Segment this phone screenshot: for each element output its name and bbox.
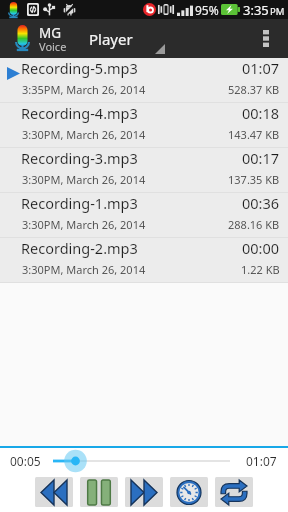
staticText: 95% bbox=[195, 2, 219, 18]
staticText: 1.22 KB bbox=[241, 262, 280, 277]
button[interactable]: Pause bbox=[80, 477, 118, 507]
staticText: 528.37 KB bbox=[228, 82, 280, 97]
staticText: 3:30PM, March 26, 2014 bbox=[22, 127, 146, 142]
staticText: 3:35PM, March 26, 2014 bbox=[22, 82, 146, 97]
button[interactable]: Rewind bbox=[35, 477, 73, 507]
staticText: Recording-4.mp3 bbox=[21, 103, 138, 123]
staticText: 00:00 bbox=[242, 238, 280, 258]
staticText: 00:18 bbox=[242, 103, 280, 123]
button[interactable]: Recording-5.mp3 bbox=[0, 58, 288, 102]
staticText: 00:05 bbox=[10, 453, 41, 469]
staticText: 3:35 bbox=[243, 1, 269, 19]
staticText: 288.16 KB bbox=[228, 217, 280, 232]
button[interactable]: Recording-2.mp3 bbox=[0, 238, 288, 282]
staticText: PM bbox=[270, 5, 285, 18]
button[interactable]: Fast forward bbox=[125, 477, 163, 507]
staticText: Recording-3.mp3 bbox=[21, 148, 138, 168]
staticText: Recording-5.mp3 bbox=[21, 58, 138, 78]
button[interactable]: More options bbox=[254, 19, 288, 58]
button[interactable]: Recording-4.mp3 bbox=[0, 103, 288, 147]
staticText: 137.35 KB bbox=[228, 172, 280, 187]
staticText: 00:36 bbox=[242, 193, 280, 213]
button[interactable]: Playback speed bbox=[170, 477, 208, 507]
staticText: 143.47 KB bbox=[228, 127, 280, 142]
staticText: 01:07 bbox=[242, 58, 280, 78]
staticText: Voice bbox=[39, 39, 67, 54]
staticText: MG bbox=[39, 24, 62, 42]
staticText: Player bbox=[89, 29, 133, 49]
staticText: Recording-1.mp3 bbox=[21, 193, 138, 213]
staticText: 3:30PM, March 26, 2014 bbox=[22, 172, 146, 187]
button[interactable]: Repeat bbox=[215, 477, 253, 507]
staticText: 3:30PM, March 26, 2014 bbox=[22, 262, 146, 277]
staticText: 3:30PM, March 26, 2014 bbox=[22, 217, 146, 232]
staticText: Recording-2.mp3 bbox=[21, 238, 138, 258]
button[interactable]: Recording-1.mp3 bbox=[0, 193, 288, 237]
staticText: 01:07 bbox=[246, 453, 277, 469]
button[interactable]: Recording-3.mp3 bbox=[0, 148, 288, 192]
staticText: 00:17 bbox=[242, 148, 280, 168]
